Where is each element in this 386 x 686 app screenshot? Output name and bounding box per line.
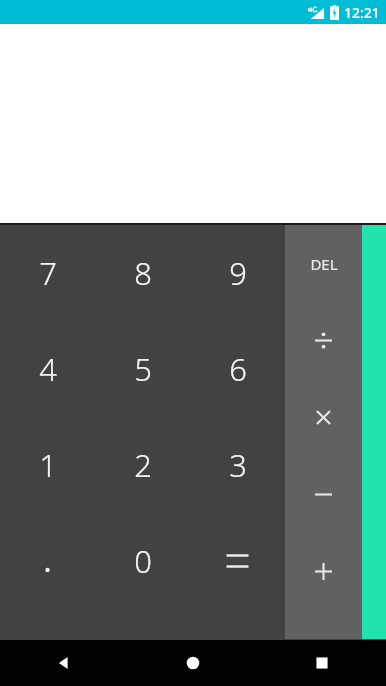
button[interactable]: 8 [95,225,190,321]
button[interactable]: 7 [0,225,95,321]
button[interactable]: 6 [190,321,285,417]
button[interactable]: 3 [190,417,285,513]
button[interactable]: 5 [95,321,190,417]
button[interactable]: Back [0,640,128,686]
staticText: 5 [134,348,152,390]
button[interactable]: 2 [95,417,190,513]
staticText: 3 [229,444,247,486]
button[interactable]: Subtract [285,456,362,533]
staticText: 12:21 [344,3,380,22]
button[interactable]: Add [285,533,362,610]
staticText: 0 [134,540,152,582]
button[interactable]: Divide [285,302,362,379]
button[interactable]: 9 [190,225,285,321]
button[interactable]: Recent apps [257,640,386,686]
staticText: 6 [229,348,247,390]
button[interactable]: 1 [0,417,95,513]
button[interactable]: 4 [0,321,95,417]
button[interactable] [0,513,95,609]
button[interactable]: 0 [95,513,190,609]
button[interactable]: Multiply [285,379,362,456]
staticText: 4 [39,348,57,390]
button[interactable]: Home [128,640,257,686]
staticText: DEL [310,254,338,274]
button[interactable]: DEL [285,225,362,302]
staticText: 1 [39,444,57,486]
staticText: 7 [39,252,57,294]
staticText: 2 [134,444,152,486]
button[interactable] [190,513,285,609]
staticText: 8 [134,252,152,294]
staticText: 9 [229,252,247,294]
